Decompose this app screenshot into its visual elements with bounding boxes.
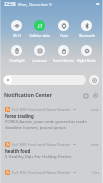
staticText: FOREX-Aussie, yuan cede ground as trade xyxy=(5,119,87,125)
button[interactable]: Full RSS Feed and News Reader xyxy=(0,142,103,160)
staticText: Night Mode xyxy=(77,58,96,63)
staticText: Bluetooth xyxy=(79,33,95,38)
button[interactable]: Notification settings xyxy=(92,92,99,99)
staticText: 5 Healthy Dips For Holiday Parties xyxy=(5,154,72,160)
staticText: Full RSS Feed and News Reader xyxy=(12,142,71,147)
staticText: 22:58 xyxy=(4,1,16,7)
button[interactable]: Data xyxy=(52,20,75,38)
button[interactable]: Clear all notifications xyxy=(82,92,89,99)
button[interactable]: Wi-Fi xyxy=(5,20,28,38)
staticText: health food xyxy=(5,148,31,154)
staticText: forex trading xyxy=(5,113,34,119)
staticText: now xyxy=(91,107,99,112)
button[interactable]: Quick settings editor xyxy=(89,75,99,85)
button[interactable]: Smart Rotate xyxy=(52,45,75,63)
button[interactable]: Bluetooth xyxy=(75,20,98,38)
button[interactable]: Cellular data xyxy=(28,20,51,38)
staticText: Full RSS Feed and News Reader xyxy=(12,107,71,112)
staticText: Mon, December 9 xyxy=(18,2,52,7)
button[interactable]: Full RSS Feed and News Reader xyxy=(0,107,103,131)
staticText: now xyxy=(91,142,99,147)
staticText: Full RSS Feed and News Reader xyxy=(12,170,71,175)
staticText: 1 bn xyxy=(91,170,99,175)
staticText: Notification Center xyxy=(4,92,53,99)
staticText: Wi-Fi xyxy=(13,33,21,38)
staticText: Lanteana xyxy=(32,58,47,63)
button[interactable]: Lanteana xyxy=(28,45,51,63)
staticText: Cellular data xyxy=(29,33,50,38)
staticText: Smart Rotate xyxy=(53,58,74,63)
button[interactable]: Night Mode xyxy=(75,45,98,63)
button[interactable]: Flashlight xyxy=(5,45,28,63)
button[interactable] xyxy=(3,75,86,85)
staticText: Flashlight xyxy=(9,58,25,63)
button[interactable]: Full RSS Feed and News Reader xyxy=(0,170,103,175)
staticText: Data xyxy=(60,33,68,38)
staticText: deadline loomes; pound jumps xyxy=(5,125,66,131)
